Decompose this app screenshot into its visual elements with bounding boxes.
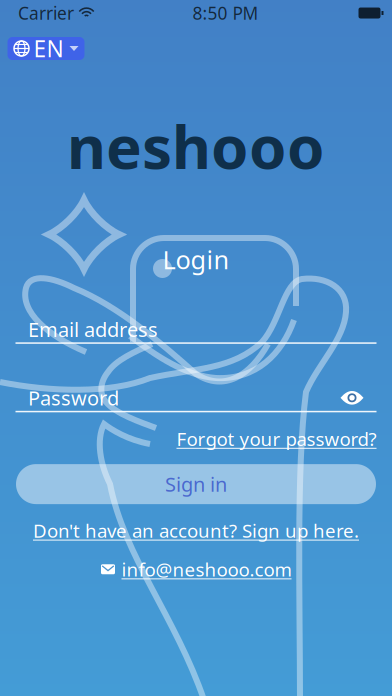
staticText: Don't have an account? Sign up here. [33, 518, 359, 543]
staticText: Forgot your password? [176, 426, 376, 451]
staticText: Password [28, 384, 119, 411]
button[interactable]: Sign in [16, 464, 376, 504]
button[interactable]: EN [7, 37, 84, 60]
staticText: Carrier [18, 1, 74, 24]
staticText: Sign in [165, 471, 227, 497]
staticText: info@neshooo.com [121, 557, 291, 582]
staticText: Login [162, 243, 229, 276]
button[interactable]: Show password [340, 390, 364, 406]
button[interactable]: Don't have an account? Sign up here. [33, 518, 359, 543]
button[interactable]: info@neshooo.com [100, 557, 291, 582]
button[interactable]: Forgot your password? [176, 426, 376, 451]
staticText: 8:50 PM [192, 1, 258, 24]
staticText: Email address [28, 316, 158, 343]
staticText: neshooo [67, 106, 325, 186]
staticText: EN [33, 33, 63, 63]
